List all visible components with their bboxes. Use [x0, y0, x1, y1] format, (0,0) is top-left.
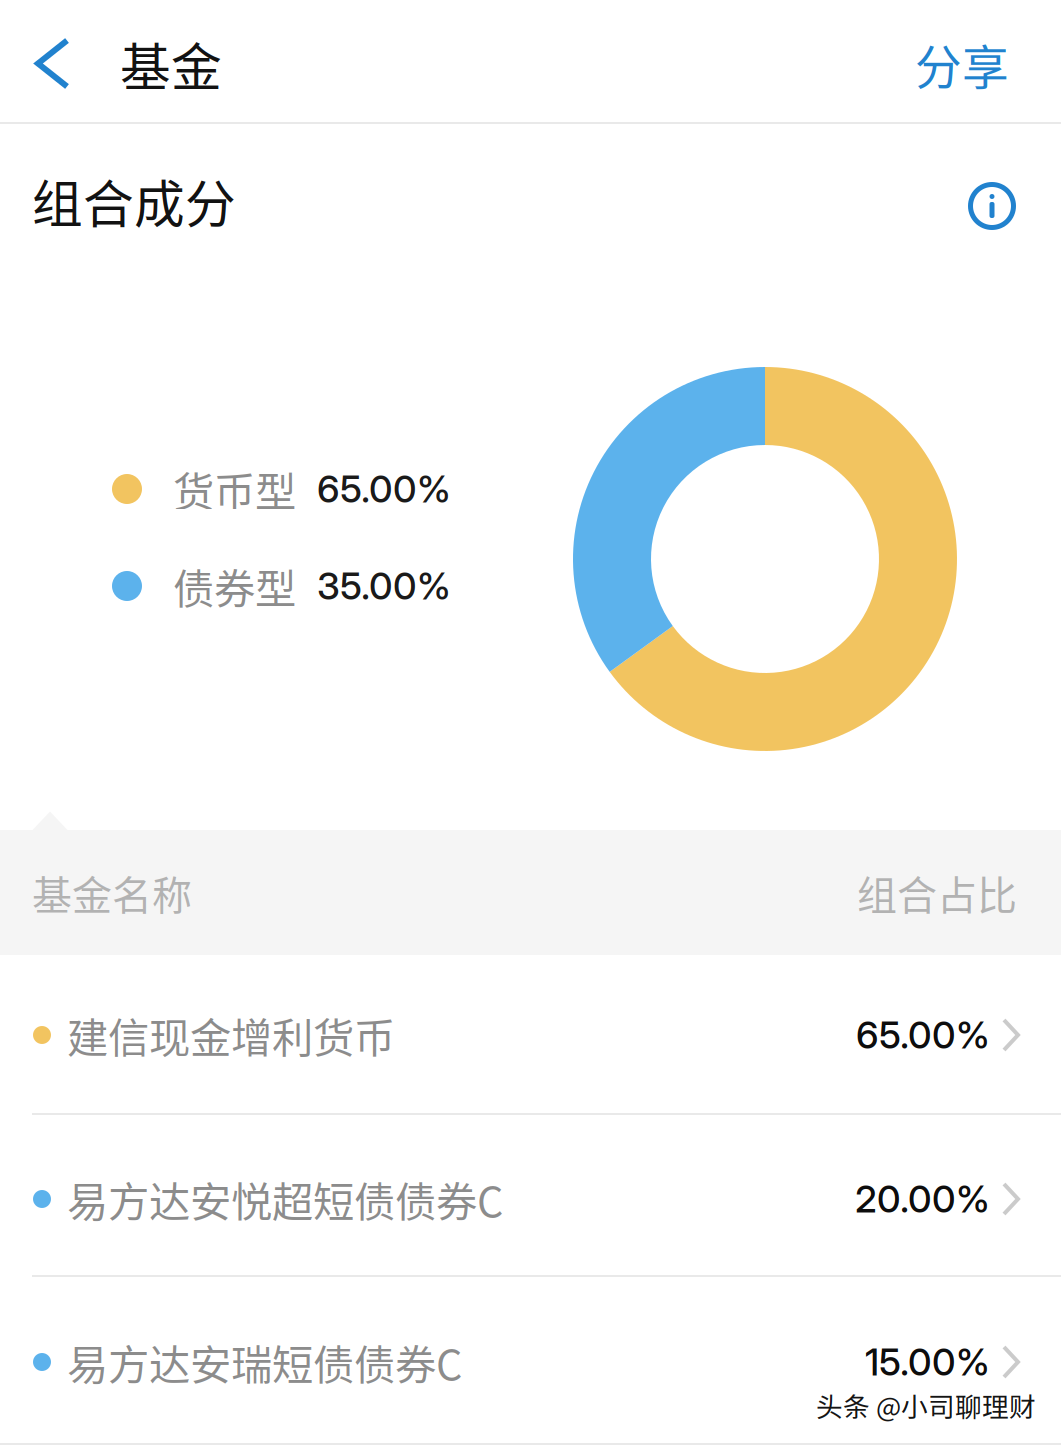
button[interactable]: 建信现金增利货币: [0, 955, 1061, 1113]
staticText: 易方达安悦超短债债券C: [67, 1169, 503, 1229]
staticText: 建信现金增利货币: [67, 1005, 395, 1065]
staticText: 易方达安瑞短债债券C: [67, 1332, 462, 1392]
staticText: 头条 @小司聊理财: [818, 1384, 1038, 1422]
staticText: 35.00%: [317, 563, 451, 609]
staticText: 20.00%: [855, 1176, 990, 1222]
staticText: 货币型: [173, 459, 296, 519]
staticText: 头条 @小司聊理财: [814, 1388, 1034, 1426]
staticText: 组合成分: [32, 164, 236, 238]
button[interactable]: Back: [0, 0, 120, 122]
staticText: 65.00%: [856, 1012, 990, 1058]
staticText: 65.00%: [317, 466, 451, 512]
staticText: 基金名称: [32, 863, 192, 921]
button[interactable]: 易方达安悦超短债债券C: [0, 1115, 1061, 1275]
staticText: 基金: [120, 27, 222, 101]
button[interactable]: 分享: [915, 0, 1061, 122]
staticText: 头条 @小司聊理财: [814, 1384, 1034, 1422]
button[interactable]: Information: [969, 124, 1061, 266]
staticText: 组合占比: [857, 863, 1017, 921]
staticText: 头条 @小司聊理财: [818, 1388, 1038, 1426]
staticText: 15.00%: [865, 1339, 990, 1385]
button[interactable]: 易方达安瑞短债债券C: [0, 1277, 1061, 1443]
staticText: 债券型: [173, 556, 296, 616]
staticText: 分享: [915, 30, 1009, 98]
staticText: 头条 @小司聊理财: [816, 1386, 1036, 1424]
